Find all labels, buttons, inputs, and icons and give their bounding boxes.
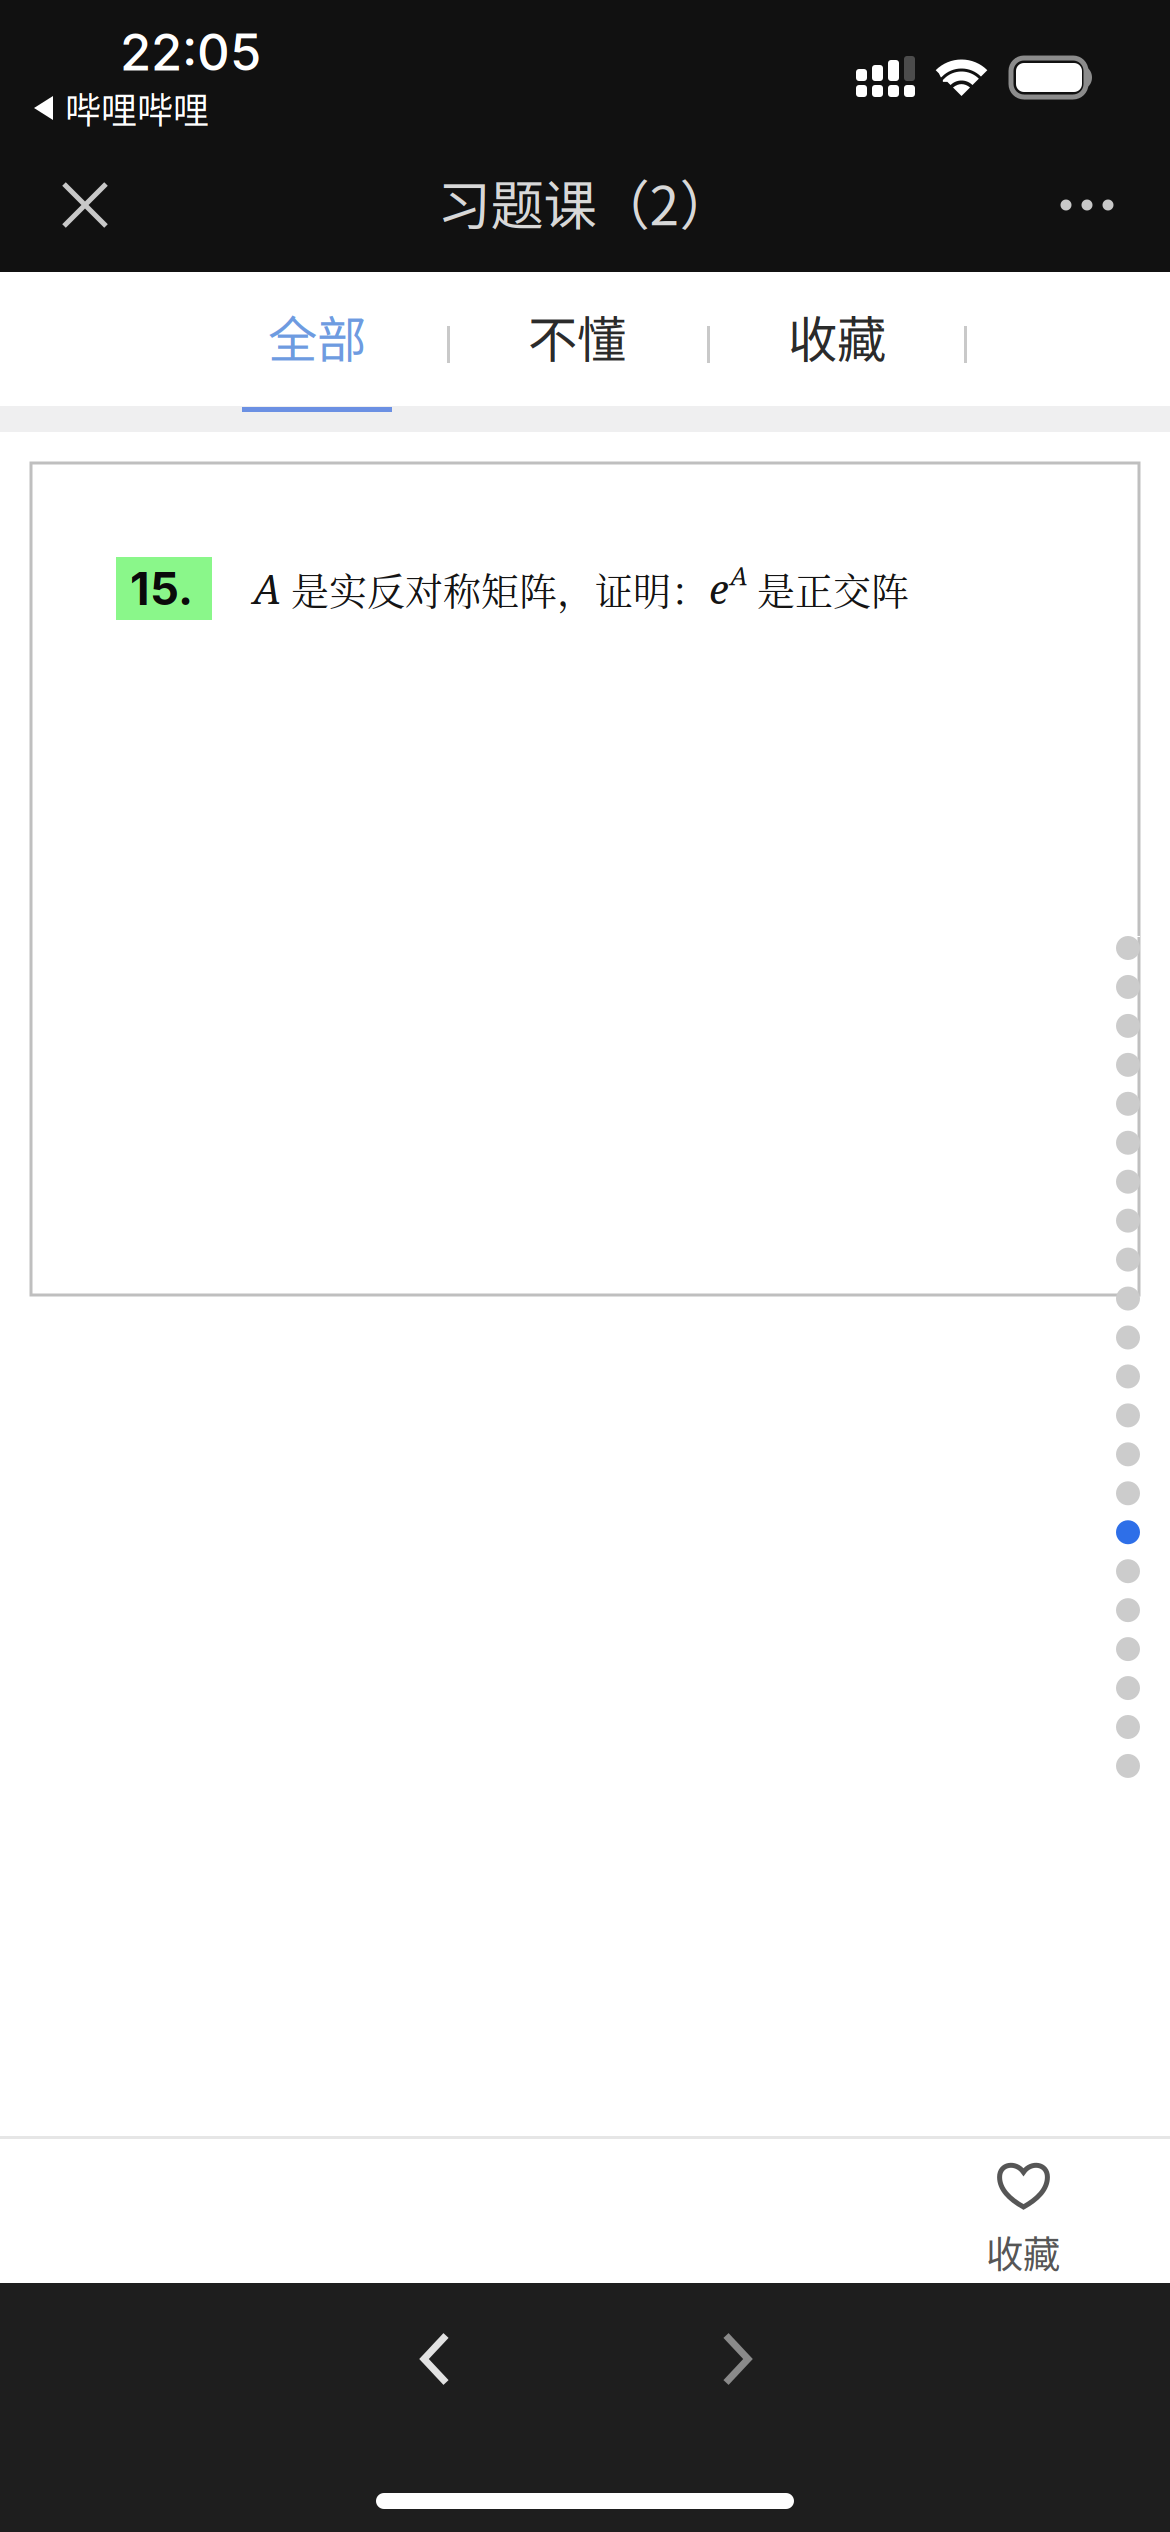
staticText: A [253, 561, 281, 616]
button[interactable]: Close [21, 150, 149, 260]
staticText: 习题课（2） [437, 163, 732, 241]
button[interactable]: 收藏 [732, 272, 942, 406]
staticText: 是正交阵 [747, 561, 909, 616]
button[interactable]: 全部 [212, 272, 422, 406]
button[interactable]: Back [380, 2304, 490, 2414]
staticText: 收藏 [986, 2225, 1060, 2279]
button[interactable]: 不懂 [472, 272, 682, 406]
staticText: 不懂 [528, 300, 626, 372]
staticText: 15. [130, 561, 193, 616]
staticText: A [730, 558, 748, 593]
button[interactable]: Forward [682, 2304, 792, 2414]
staticText: 收藏 [788, 300, 886, 372]
staticText: 全部 [268, 300, 366, 372]
button[interactable]: 哔哩哔哩 [34, 88, 264, 128]
staticText: 是实反对称矩阵，证明： [281, 561, 709, 616]
staticText: e [709, 561, 729, 616]
staticText: 22:05 [120, 21, 261, 83]
button[interactable]: 收藏 [943, 2140, 1103, 2280]
button[interactable]: More options [1023, 150, 1151, 260]
staticText: 哔哩哔哩 [65, 82, 209, 134]
